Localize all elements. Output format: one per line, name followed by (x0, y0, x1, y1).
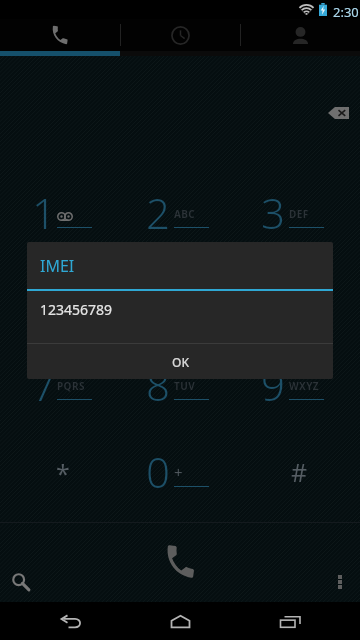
button[interactable] (120, 444, 240, 530)
button[interactable]: Search (4, 566, 38, 598)
button[interactable]: Home (140, 602, 220, 640)
staticText: 123456789 (40, 300, 113, 319)
staticText: IMEI (40, 255, 75, 277)
button[interactable]: Call log (121, 19, 240, 51)
button[interactable]: OK (27, 344, 333, 379)
button[interactable]: Contacts (241, 19, 360, 51)
button[interactable]: Dialer (0, 19, 120, 51)
button[interactable] (0, 444, 120, 530)
staticText: 2:30 (333, 3, 359, 21)
staticText: ABC (174, 207, 196, 221)
staticText: 1 (32, 184, 56, 241)
button[interactable] (240, 185, 360, 271)
button[interactable] (0, 185, 120, 271)
staticText: OK (172, 354, 189, 370)
button[interactable]: Back (30, 602, 110, 640)
staticText: GHI (57, 293, 77, 307)
staticText: 3 (261, 184, 285, 241)
button[interactable] (120, 357, 240, 443)
button[interactable]: More options (324, 566, 356, 598)
staticText: 2 (146, 184, 170, 241)
button[interactable] (0, 271, 120, 357)
button[interactable] (240, 444, 360, 530)
staticText: 9 (261, 356, 285, 413)
staticText: + (174, 462, 183, 482)
staticText: PQRS (57, 379, 85, 393)
button[interactable]: Call (135, 535, 225, 587)
staticText: WXYZ (289, 379, 320, 393)
staticText: 5 (146, 270, 170, 327)
button[interactable] (120, 185, 240, 271)
staticText: DEF (289, 207, 309, 221)
staticText: # (291, 455, 308, 489)
staticText: * (56, 456, 70, 490)
staticText: 8 (146, 356, 170, 413)
button[interactable]: Recents (250, 602, 330, 640)
button[interactable]: Backspace (316, 96, 360, 130)
button[interactable] (0, 357, 120, 443)
button[interactable] (240, 271, 360, 357)
button[interactable] (120, 271, 240, 357)
staticText: 4 (32, 270, 56, 327)
staticText: 7 (32, 356, 56, 413)
button[interactable] (240, 357, 360, 443)
staticText: 6 (261, 270, 285, 327)
staticText: TUV (174, 379, 196, 393)
staticText: 0 (146, 443, 170, 500)
